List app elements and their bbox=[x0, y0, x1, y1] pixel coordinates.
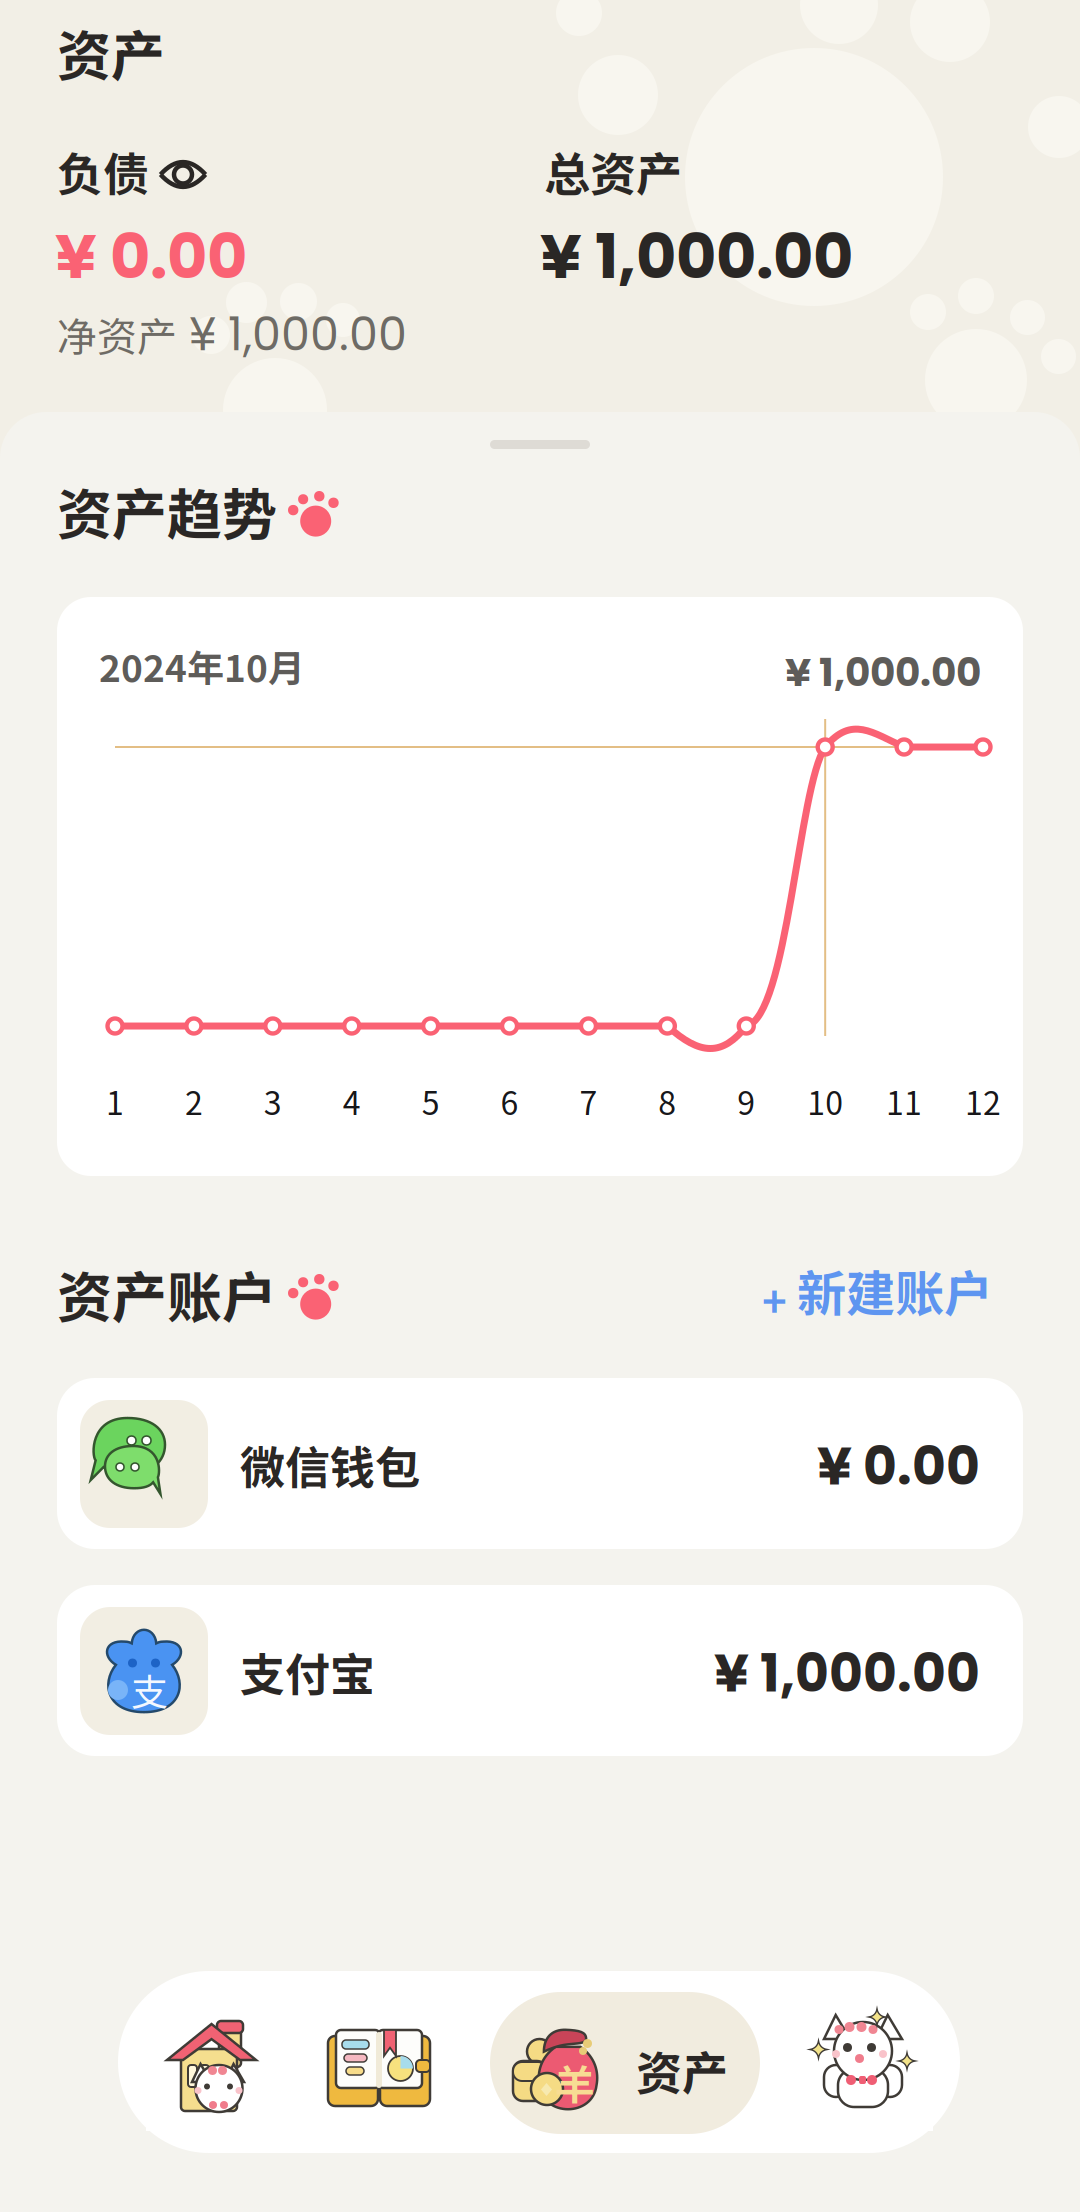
button[interactable]: 我的 bbox=[793, 2001, 933, 2131]
staticText: 3 bbox=[264, 1078, 282, 1124]
staticText: 资产 bbox=[57, 13, 165, 91]
button[interactable]: + bbox=[754, 1255, 1004, 1331]
staticText: 总资产 bbox=[544, 138, 682, 205]
staticText: 负债 bbox=[57, 138, 149, 205]
button[interactable]: 账本 bbox=[309, 2001, 449, 2131]
staticText: + bbox=[762, 1269, 787, 1330]
staticText: 10 bbox=[807, 1078, 843, 1124]
staticText: 8 bbox=[658, 1078, 676, 1124]
staticText: ¥ 1,000.00 bbox=[540, 213, 853, 300]
staticText: 支 bbox=[131, 1663, 168, 1717]
button[interactable]: 羊 bbox=[490, 1992, 760, 2134]
staticText: 新建账户 bbox=[797, 1255, 993, 1326]
staticText: 资产趋势 bbox=[57, 471, 277, 551]
button[interactable]: 首页 bbox=[146, 2001, 277, 2131]
staticText: 7 bbox=[579, 1078, 597, 1124]
button[interactable]: 支 bbox=[57, 1585, 1023, 1756]
staticText: 11 bbox=[886, 1078, 922, 1124]
staticText: ¥ 0.00 bbox=[55, 213, 247, 300]
staticText: 微信钱包 bbox=[240, 1432, 420, 1497]
staticText: 支付宝 bbox=[240, 1639, 375, 1704]
staticText: 5 bbox=[422, 1078, 440, 1124]
staticText: 2 bbox=[185, 1078, 203, 1124]
staticText: ¥ 1,000.00 bbox=[189, 302, 407, 366]
staticText: ¥ 1,000.00 bbox=[785, 645, 981, 700]
staticText: 资产 bbox=[636, 2037, 728, 2104]
staticText: ¥ 0.00 bbox=[817, 1430, 980, 1503]
staticText: 1 bbox=[106, 1078, 124, 1124]
staticText: 2024年10月 bbox=[99, 639, 305, 693]
staticText: 净资产 bbox=[57, 305, 177, 363]
staticText: 4 bbox=[343, 1078, 361, 1124]
staticText: 12 bbox=[965, 1078, 1001, 1124]
staticText: 资产账户 bbox=[57, 1254, 277, 1334]
button[interactable]: 微信钱包 bbox=[57, 1378, 1023, 1549]
staticText: 6 bbox=[500, 1078, 518, 1124]
staticText: 9 bbox=[737, 1078, 755, 1124]
staticText: ¥ 1,000.00 bbox=[714, 1637, 980, 1710]
staticText: 羊 bbox=[555, 2053, 595, 2111]
